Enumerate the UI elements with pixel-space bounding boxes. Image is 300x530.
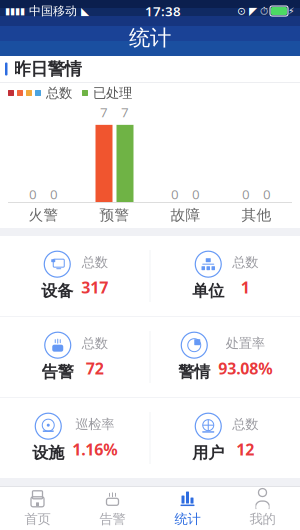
- staticText: 用户: [192, 443, 224, 463]
- button[interactable]: 用户: [150, 398, 300, 478]
- staticText: 0: [171, 185, 179, 203]
- staticText: 7: [121, 103, 129, 121]
- button[interactable]: 告警: [0, 317, 149, 397]
- staticText: ⊙ ◤ ⏱: [237, 5, 268, 17]
- staticText: 其他: [241, 206, 271, 224]
- staticText: 昨日警情: [13, 58, 81, 80]
- staticText: 处置率: [226, 335, 265, 352]
- staticText: 预警: [99, 206, 129, 224]
- staticText: 总数: [232, 416, 258, 433]
- staticText: 1: [241, 277, 250, 298]
- staticText: 已处理: [93, 85, 132, 101]
- staticText: 0: [242, 185, 250, 203]
- button[interactable]: 首页: [0, 487, 75, 530]
- staticText: 火警: [28, 206, 58, 224]
- staticText: 设备: [41, 281, 73, 301]
- staticText: 总数: [82, 335, 108, 352]
- staticText: 0: [192, 185, 200, 203]
- staticText: 12: [236, 439, 254, 460]
- staticText: 0: [50, 185, 58, 203]
- button[interactable]: 警情: [150, 317, 300, 397]
- staticText: 0: [29, 185, 37, 203]
- staticText: 总数: [46, 85, 72, 101]
- staticText: 设施: [32, 443, 64, 463]
- staticText: 统计: [129, 25, 171, 51]
- staticText: ◣: [81, 5, 89, 17]
- staticText: 0: [263, 185, 271, 203]
- staticText: 警情: [178, 362, 210, 382]
- staticText: 故障: [170, 206, 200, 224]
- staticText: 首页: [24, 511, 50, 527]
- staticText: 1.16%: [72, 439, 117, 460]
- button[interactable]: 告警: [75, 487, 150, 530]
- staticText: ⚡︎: [288, 6, 295, 16]
- button[interactable]: 统计: [150, 487, 225, 530]
- button[interactable]: 单位: [150, 236, 300, 316]
- staticText: 我的: [249, 511, 275, 527]
- staticText: 317: [81, 277, 108, 298]
- staticText: 巡检率: [75, 416, 114, 433]
- staticText: 总数: [82, 254, 108, 271]
- button[interactable]: 设备: [0, 236, 149, 316]
- staticText: 统计: [174, 511, 200, 527]
- staticText: 中国移动: [25, 4, 81, 18]
- button[interactable]: 设施: [0, 398, 149, 478]
- staticText: 告警: [42, 362, 74, 382]
- staticText: 17:38: [145, 2, 181, 20]
- button[interactable]: 我的: [225, 487, 300, 530]
- staticText: 72: [86, 358, 104, 379]
- staticText: 单位: [192, 281, 224, 301]
- staticText: 告警: [99, 511, 125, 527]
- staticText: 7: [100, 103, 108, 121]
- staticText: 93.08%: [218, 358, 272, 379]
- staticText: ▮▮▮▮: [5, 6, 25, 16]
- staticText: 总数: [232, 254, 258, 271]
